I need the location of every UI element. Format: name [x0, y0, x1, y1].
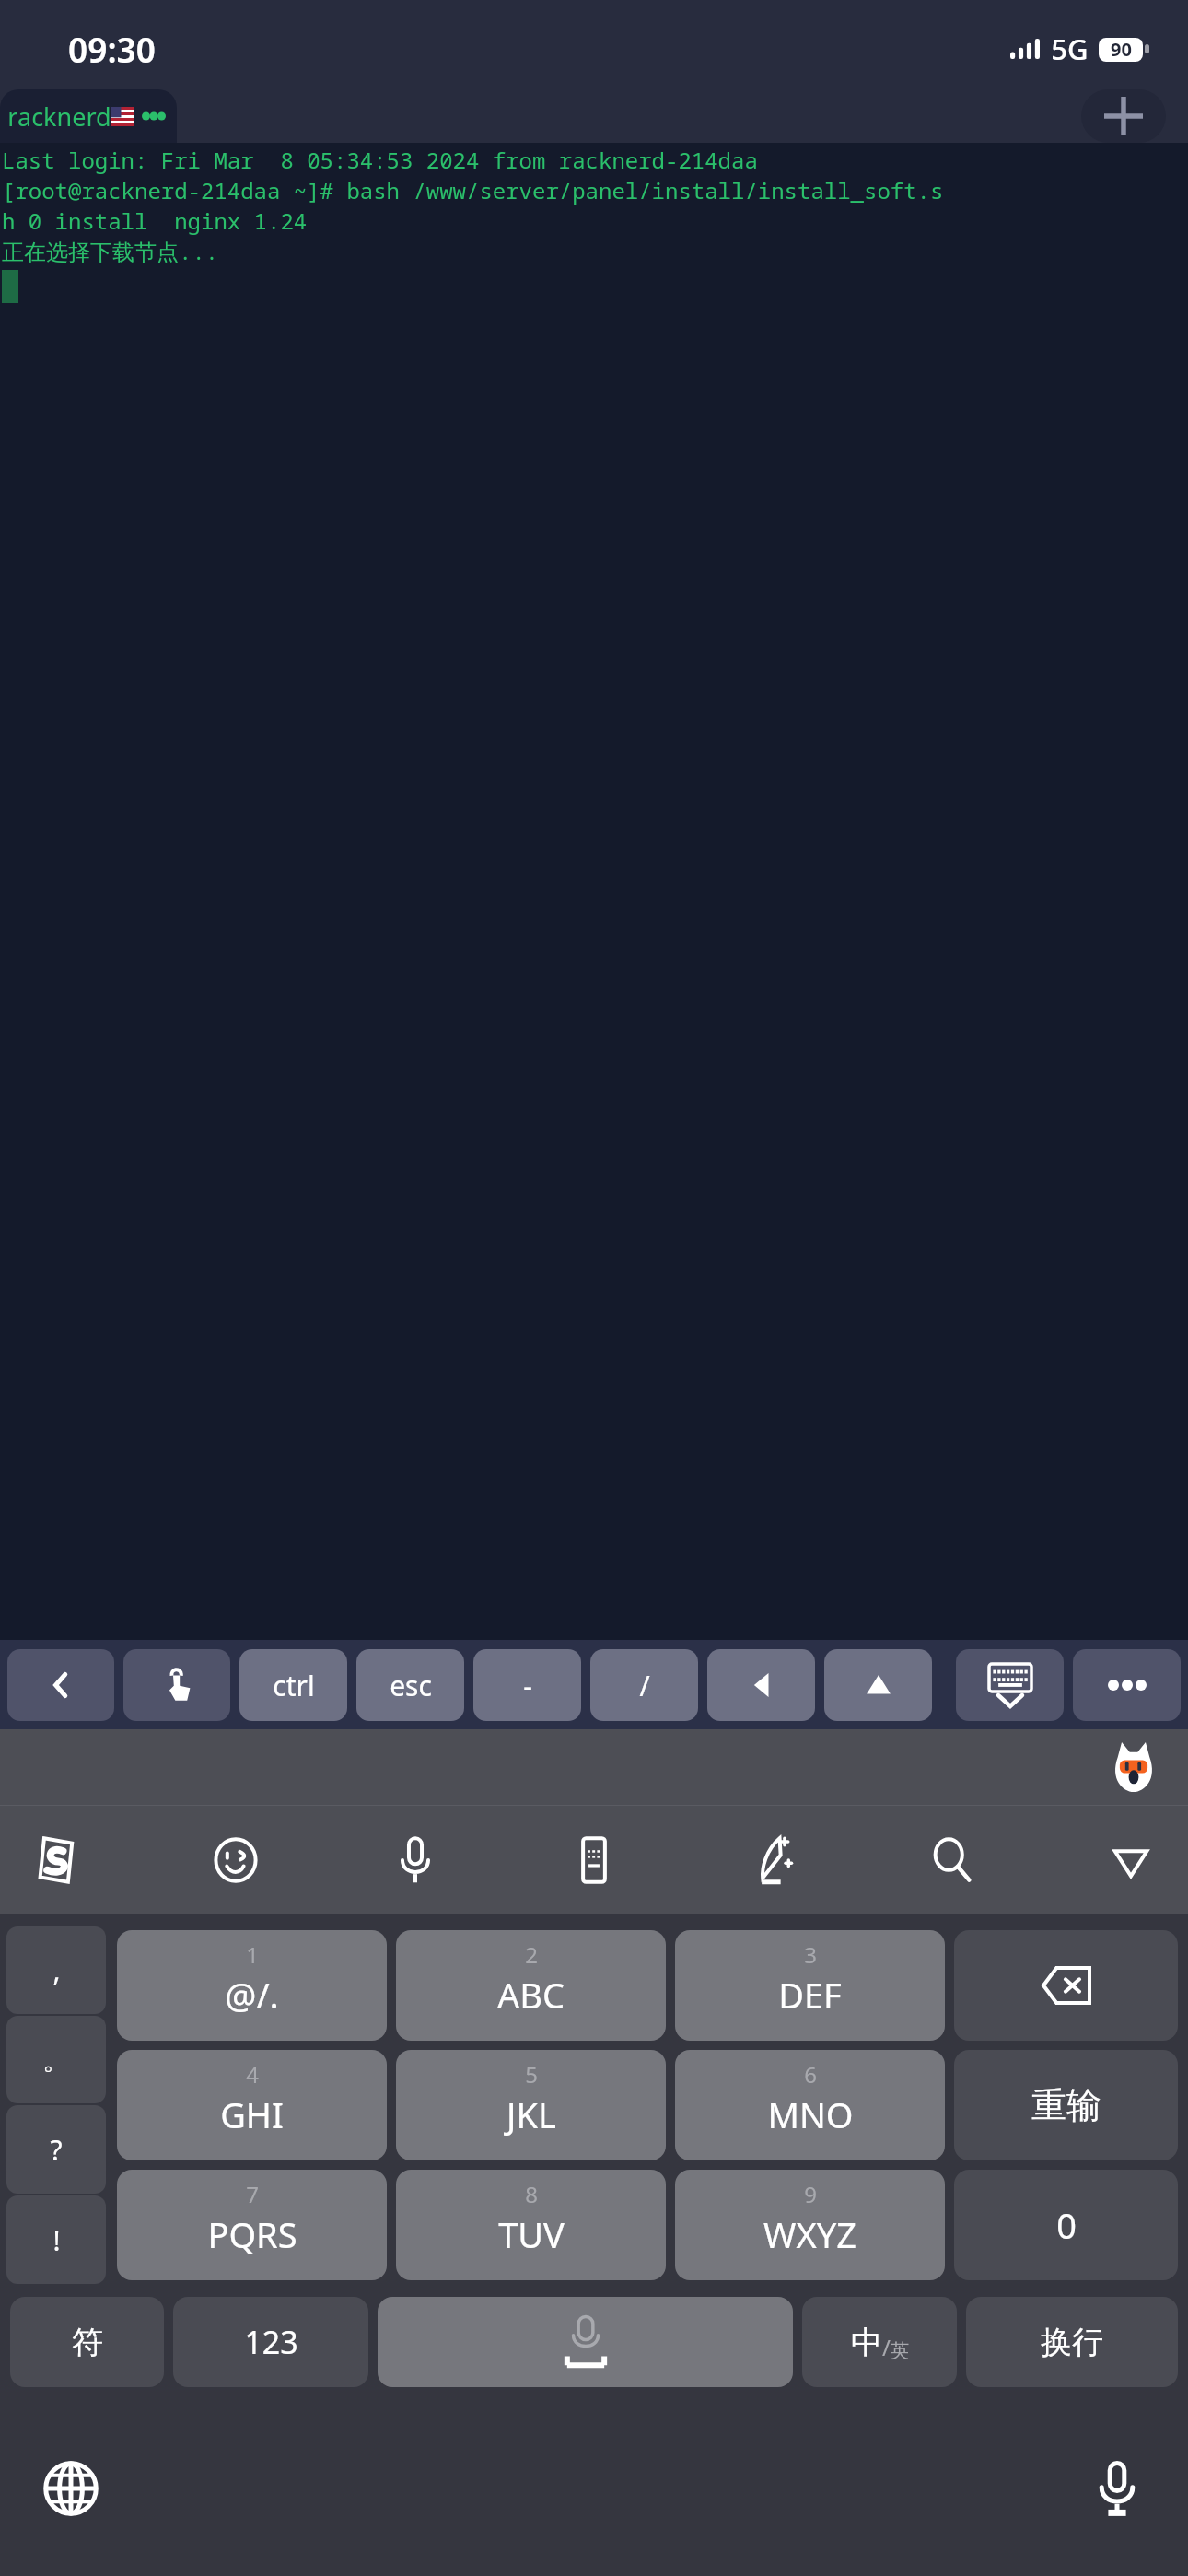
button[interactable]: Back	[7, 1649, 114, 1721]
staticText: MNO	[767, 2090, 854, 2138]
staticText: 英	[891, 2339, 909, 2362]
staticText: /	[639, 1667, 650, 1704]
staticText: 1	[246, 1939, 259, 1970]
button[interactable]: esc	[356, 1649, 464, 1721]
button[interactable]: Voice input	[1085, 2456, 1149, 2521]
staticText: 90	[1111, 37, 1132, 62]
button[interactable]: 7	[117, 2170, 387, 2280]
staticText: PQRS	[207, 2210, 297, 2258]
button[interactable]: ,	[6, 1926, 106, 2014]
button[interactable]: mic	[379, 1823, 452, 1897]
staticText: TUV	[498, 2210, 565, 2258]
staticText: GHI	[220, 2090, 284, 2138]
button[interactable]: 4	[117, 2050, 387, 2160]
button[interactable]: 8	[396, 2170, 666, 2280]
staticText: 8	[525, 2179, 538, 2209]
staticText: 换行	[1041, 2323, 1103, 2362]
button[interactable]: Space	[378, 2297, 793, 2387]
staticText: @/.	[225, 1971, 279, 2019]
staticText: 。	[42, 2043, 70, 2078]
staticText: 符	[72, 2323, 103, 2362]
button[interactable]: down	[1094, 1823, 1168, 1897]
staticText: Last login: Fri Mar 8 05:34:53 2024 from…	[2, 145, 758, 175]
button[interactable]: Touch mode	[123, 1649, 230, 1721]
staticText: 7	[246, 2179, 259, 2209]
button[interactable]: ?	[6, 2105, 106, 2194]
button[interactable]: 6	[675, 2050, 945, 2160]
staticText: h 0 install nginx 1.24	[2, 205, 308, 236]
staticText: [root@racknerd-214daa ~]# bash /www/serv…	[2, 175, 944, 205]
staticText: 09:30	[68, 26, 156, 72]
button[interactable]: search	[915, 1823, 989, 1897]
staticText: ctrl	[273, 1667, 315, 1704]
button[interactable]: Delete	[954, 1930, 1178, 2041]
staticText: ABC	[497, 1971, 565, 2019]
button[interactable]: /	[590, 1649, 698, 1721]
staticText: 重输	[1031, 2083, 1101, 2127]
staticText: -	[523, 1667, 532, 1704]
button[interactable]: 3	[675, 1930, 945, 2041]
button[interactable]: New session	[1081, 89, 1166, 143]
button[interactable]: More	[1073, 1649, 1181, 1721]
staticText: 0	[1056, 2201, 1077, 2249]
staticText: ?	[50, 2131, 63, 2169]
button[interactable]: Switch language	[39, 2456, 103, 2521]
staticText: 正在选择下载节点...	[2, 236, 219, 266]
staticText: esc	[390, 1667, 432, 1704]
button[interactable]: 5	[396, 2050, 666, 2160]
staticText: 5G	[1051, 29, 1089, 68]
staticText: ,	[52, 1951, 61, 1989]
button[interactable]: emoji	[199, 1823, 273, 1897]
button[interactable]: Up arrow	[824, 1649, 932, 1721]
staticText: JKL	[507, 2090, 556, 2138]
staticText: !	[52, 2221, 61, 2259]
staticText: /	[882, 2332, 891, 2362]
button[interactable]: 9	[675, 2170, 945, 2280]
staticText: 123	[244, 2321, 298, 2363]
button[interactable]: Left arrow	[707, 1649, 815, 1721]
button[interactable]: Assistant	[1107, 1740, 1160, 1794]
button[interactable]: 123	[173, 2297, 368, 2387]
staticText: 中	[851, 2323, 882, 2362]
staticText: 5	[525, 2059, 538, 2090]
button[interactable]: 中	[802, 2297, 957, 2387]
staticText: 3	[804, 1939, 817, 1970]
staticText: 4	[246, 2059, 259, 2090]
button[interactable]: ctrl	[239, 1649, 347, 1721]
button[interactable]: -	[473, 1649, 581, 1721]
staticText: WXYZ	[763, 2210, 856, 2258]
button[interactable]: panel	[557, 1823, 631, 1897]
staticText: 6	[804, 2059, 817, 2090]
button[interactable]: racknerd	[0, 89, 177, 143]
staticText: 2	[525, 1939, 538, 1970]
button[interactable]: 1	[117, 1930, 387, 2041]
staticText: 9	[804, 2179, 817, 2209]
staticText: DEF	[778, 1971, 842, 2019]
button[interactable]: 符	[10, 2297, 164, 2387]
button[interactable]: sogou	[20, 1823, 94, 1897]
button[interactable]: Hide keyboard	[956, 1649, 1064, 1721]
button[interactable]: 重输	[954, 2050, 1178, 2160]
button[interactable]: pen	[736, 1823, 809, 1897]
button[interactable]: !	[6, 2195, 106, 2284]
staticText: racknerd	[7, 100, 111, 134]
button[interactable]: 0	[954, 2170, 1178, 2280]
button[interactable]: 。	[6, 2016, 106, 2103]
button[interactable]: 2	[396, 1930, 666, 2041]
button[interactable]: 换行	[966, 2297, 1178, 2387]
